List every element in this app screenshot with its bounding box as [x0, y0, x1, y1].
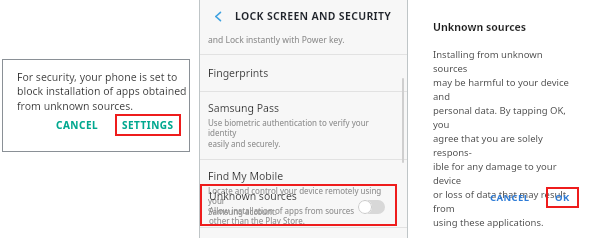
- staticText: Installing from unknown sources may be h…: [433, 48, 575, 229]
- button[interactable]: Find My Mobile: [199, 160, 408, 227]
- button[interactable]: SETTINGS: [115, 114, 181, 136]
- staticText: Use biometric authentication to verify y…: [208, 117, 399, 150]
- staticText: Samsung Pass: [208, 101, 279, 115]
- button[interactable]: Back: [207, 5, 229, 27]
- staticText: Unknown sources: [433, 20, 527, 34]
- button[interactable]: Fingerprints: [199, 55, 408, 91]
- staticText: Fingerprints: [208, 66, 269, 80]
- staticText: CANCEL: [490, 191, 530, 204]
- staticText: CANCEL: [56, 118, 99, 132]
- staticText: Find My Mobile: [208, 169, 284, 183]
- button[interactable]: CANCEL: [484, 186, 536, 209]
- staticText: LOCK SCREEN AND SECURITY: [235, 9, 392, 23]
- staticText: OK: [555, 191, 570, 204]
- staticText: Allow installation of apps from sources …: [209, 205, 355, 226]
- staticText: Locate and control your device remotely …: [208, 185, 399, 218]
- staticText: Unknown sources: [209, 189, 297, 203]
- button[interactable]: Samsung Pass: [199, 92, 408, 159]
- button[interactable]: CANCEL: [50, 113, 105, 137]
- staticText: SETTINGS: [122, 118, 174, 132]
- staticText: For security, your phone is set to block…: [17, 70, 187, 113]
- button[interactable]: Unknown sources: [200, 184, 397, 226]
- button[interactable]: OK: [546, 187, 579, 208]
- staticText: and Lock instantly with Power key.: [208, 34, 345, 46]
- button[interactable]: Unknown sources toggle: [358, 200, 385, 214]
